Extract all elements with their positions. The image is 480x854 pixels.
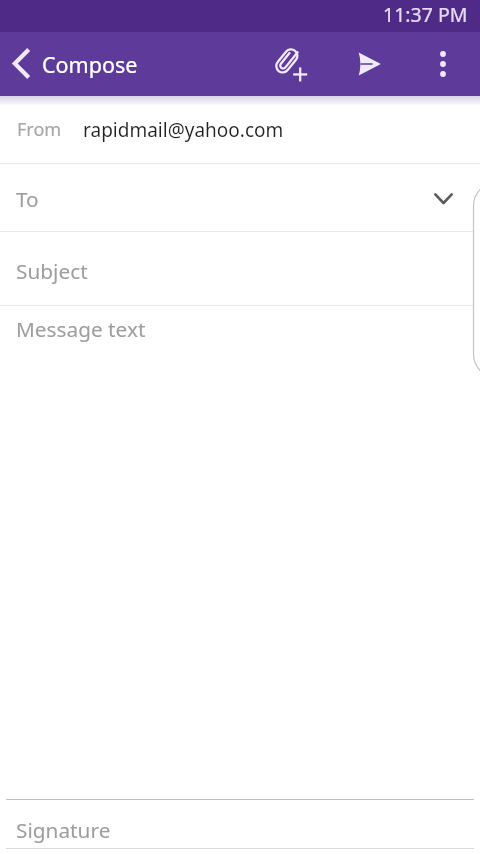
staticText: From (17, 117, 62, 142)
button[interactable]: To (0, 164, 480, 231)
button[interactable]: Show more recipient fields (406, 164, 480, 231)
button[interactable]: More options (415, 32, 471, 96)
button[interactable]: Back (0, 32, 42, 96)
button[interactable]: Signature (0, 800, 480, 848)
button[interactable]: Message text (0, 306, 480, 799)
staticText: Compose (42, 50, 138, 79)
button[interactable]: Attach file (263, 32, 319, 96)
button[interactable]: Send (339, 32, 395, 96)
staticText: Subject (16, 257, 88, 285)
button[interactable]: Subject (0, 232, 480, 305)
staticText: Signature (16, 816, 111, 844)
button[interactable]: From (0, 96, 480, 163)
staticText: Message text (16, 315, 146, 343)
staticText: To (16, 185, 39, 213)
staticText: rapidmail@yahoo.com (83, 117, 284, 143)
staticText: 11:37 PM (383, 1, 468, 28)
